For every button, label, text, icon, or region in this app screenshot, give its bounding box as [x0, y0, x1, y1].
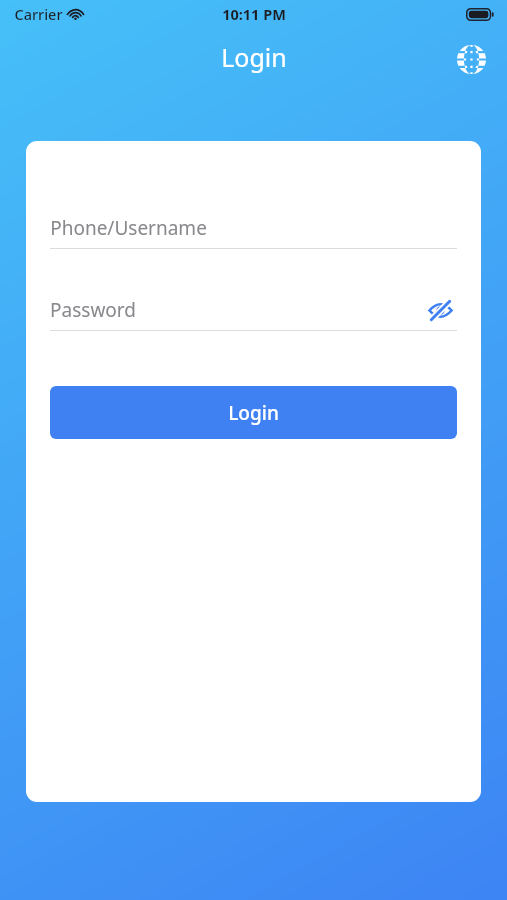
- button[interactable]: Change language: [449, 37, 493, 81]
- staticText: Phone/Username: [50, 215, 207, 241]
- staticText: Password: [50, 297, 136, 323]
- button[interactable]: Password: [50, 289, 457, 330]
- staticText: Carrier: [14, 4, 63, 24]
- button[interactable]: Login: [50, 386, 457, 439]
- staticText: Login: [228, 400, 279, 426]
- staticText: Login: [221, 40, 287, 74]
- button[interactable]: Show password: [423, 293, 457, 327]
- staticText: 10:11 PM: [222, 4, 286, 24]
- button[interactable]: Phone/Username: [50, 207, 457, 248]
